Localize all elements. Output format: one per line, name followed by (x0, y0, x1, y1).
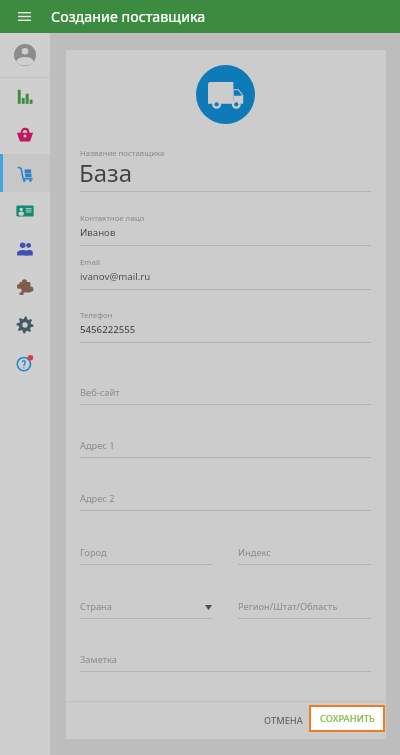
button[interactable]: СОХРАНИТЬ (311, 707, 383, 730)
button[interactable]: Account (0, 33, 50, 77)
staticText: Название поставщика (80, 148, 165, 159)
staticText: Иванов (80, 226, 116, 239)
staticText: СОХРАНИТЬ (320, 712, 375, 725)
button[interactable]: Orders (0, 116, 50, 154)
button[interactable]: Integrations (0, 268, 50, 306)
staticText: ivanov@mail.ru (80, 270, 151, 283)
staticText: Регион/Штат/Область (238, 600, 338, 613)
staticText: ОТМЕНА (264, 714, 303, 727)
staticText: База (79, 156, 133, 189)
staticText: Заметка (80, 653, 117, 666)
button[interactable]: Reports (0, 78, 50, 116)
button[interactable]: Settings (0, 306, 50, 344)
button[interactable]: Menu (11, 0, 37, 33)
staticText: Телефон (80, 310, 113, 321)
staticText: Адрес 1 (80, 439, 115, 452)
staticText: Страна (80, 600, 112, 613)
staticText: Веб-сайт (80, 386, 120, 399)
button[interactable]: ОТМЕНА (256, 707, 310, 733)
staticText: Контактное лицо (80, 213, 145, 224)
staticText: Индекс (238, 546, 271, 559)
button[interactable]: Suppliers (0, 154, 50, 192)
staticText: Адрес 2 (80, 492, 115, 505)
button[interactable]: Users (0, 230, 50, 268)
button[interactable]: Help (0, 344, 50, 382)
staticText: Email (80, 257, 101, 268)
staticText: Город (80, 546, 107, 559)
staticText: 5456222555 (80, 323, 136, 336)
staticText: Создание поставщика (51, 7, 206, 26)
button[interactable]: Contacts (0, 192, 50, 230)
